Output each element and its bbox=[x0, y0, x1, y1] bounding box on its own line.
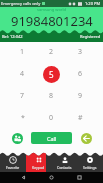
button[interactable]: 7 bbox=[8, 85, 37, 107]
button[interactable]: 8 bbox=[37, 85, 66, 107]
button[interactable]: Settings bbox=[77, 151, 103, 172]
staticText: samsung world bbox=[37, 7, 66, 12]
staticText: Contacts bbox=[57, 165, 72, 170]
staticText: 1:20 PM bbox=[85, 1, 101, 6]
button[interactable]: Call bbox=[31, 132, 72, 144]
staticText: 7 bbox=[20, 91, 25, 101]
staticText: Keypad bbox=[32, 165, 45, 170]
button[interactable]: Favorite bbox=[0, 151, 25, 172]
staticText: 1 bbox=[20, 47, 25, 57]
button[interactable]: Back bbox=[19, 173, 28, 182]
button[interactable]: 9 bbox=[66, 85, 95, 107]
button[interactable]: 6 bbox=[66, 63, 95, 85]
staticText: Favorite bbox=[6, 165, 20, 170]
staticText: Settings bbox=[83, 165, 97, 170]
button[interactable]: Home bbox=[47, 173, 56, 182]
staticText: Bel: 12:042 bbox=[2, 34, 23, 39]
button[interactable]: 2 bbox=[37, 41, 66, 63]
button[interactable]: Contacts bbox=[51, 151, 77, 172]
button[interactable]: Add contact bbox=[12, 133, 23, 144]
button[interactable]: Keypad bbox=[25, 151, 51, 172]
staticText: 4 bbox=[20, 69, 25, 79]
staticText: 3 bbox=[78, 47, 83, 57]
staticText: Emergency calls only bbox=[1, 1, 41, 6]
staticText: 2 bbox=[49, 47, 54, 57]
staticText: 6 bbox=[78, 69, 83, 79]
button[interactable]: 1 bbox=[8, 41, 37, 63]
staticText: # bbox=[78, 113, 83, 123]
staticText: 5 bbox=[49, 69, 54, 80]
staticText: Call bbox=[47, 135, 57, 142]
button[interactable]: * bbox=[8, 107, 37, 129]
button[interactable]: 3 bbox=[66, 41, 95, 63]
staticText: 8 bbox=[49, 91, 54, 101]
staticText: * bbox=[21, 113, 25, 123]
button[interactable]: 0 bbox=[37, 107, 66, 129]
staticText: 9 bbox=[78, 91, 83, 101]
staticText: 91984801234 bbox=[11, 12, 93, 30]
button[interactable]: 5 bbox=[37, 63, 66, 85]
button[interactable]: Recents bbox=[75, 173, 84, 182]
button[interactable]: Backspace bbox=[81, 133, 92, 144]
button[interactable]: # bbox=[66, 107, 95, 129]
staticText: Registered bbox=[80, 34, 101, 39]
staticText: 0 bbox=[49, 113, 54, 123]
button[interactable]: 4 bbox=[8, 63, 37, 85]
